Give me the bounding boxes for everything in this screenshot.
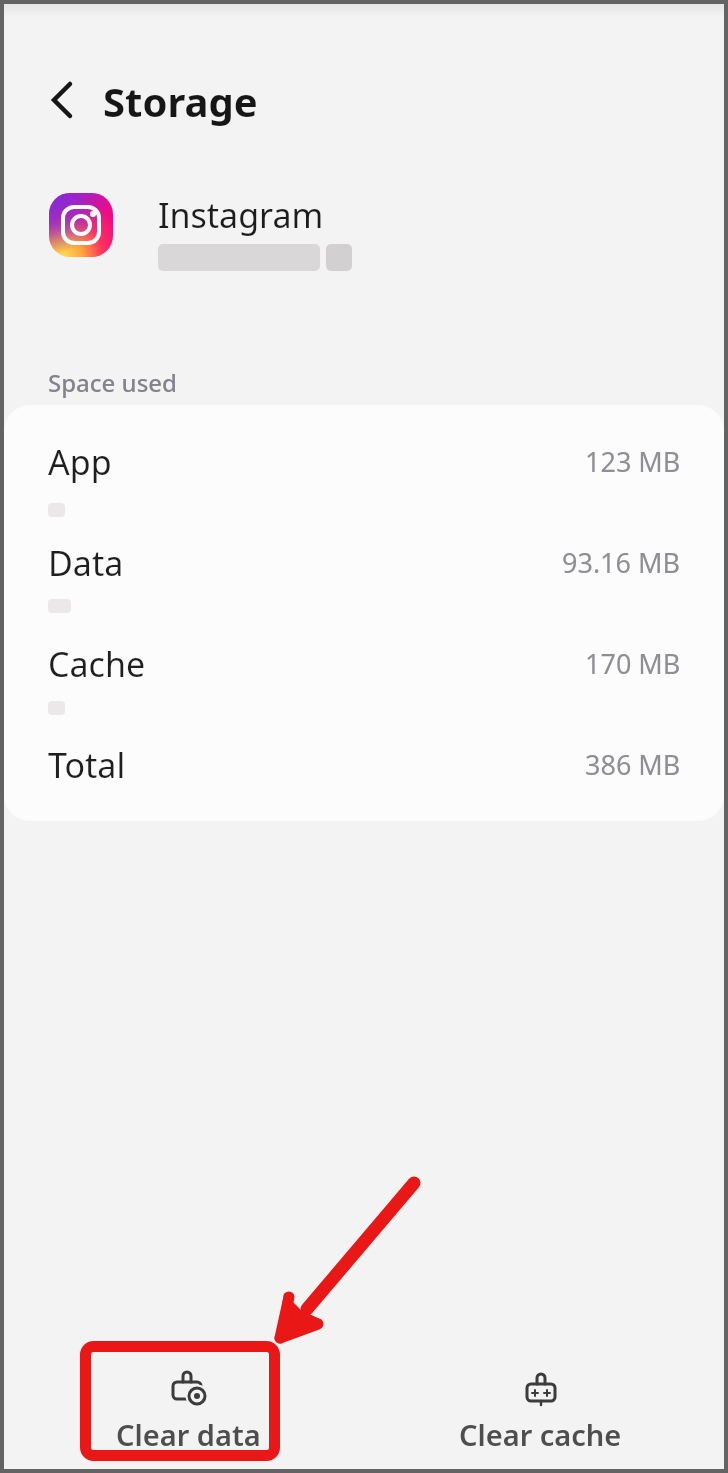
staticText: App bbox=[48, 439, 112, 485]
staticText: Total bbox=[48, 742, 126, 788]
staticText: Cache bbox=[48, 641, 146, 687]
button[interactable]: Clear cache bbox=[420, 1370, 660, 1462]
staticText: Clear data bbox=[116, 1415, 261, 1454]
button[interactable] bbox=[40, 74, 84, 126]
staticText: 93.16 MB bbox=[562, 544, 681, 581]
staticText: 170 MB bbox=[585, 645, 681, 682]
staticText: Space used bbox=[48, 366, 177, 399]
button[interactable]: Clear data bbox=[68, 1370, 308, 1462]
staticText: 386 MB bbox=[585, 746, 681, 783]
staticText: Instagram bbox=[158, 192, 324, 238]
staticText: 123 MB bbox=[585, 443, 681, 480]
staticText: Storage bbox=[103, 74, 258, 128]
staticText: Clear cache bbox=[459, 1415, 622, 1454]
staticText: Data bbox=[48, 540, 124, 586]
